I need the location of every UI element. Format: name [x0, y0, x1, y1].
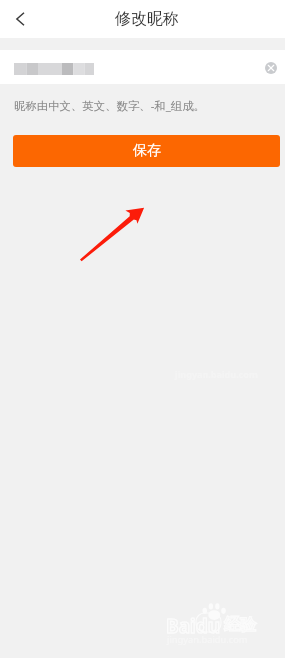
button[interactable]: Back	[0, 0, 40, 38]
staticText: 修改昵称	[115, 9, 179, 29]
button[interactable]: 保存	[13, 135, 280, 167]
staticText: 经验	[224, 615, 256, 635]
staticText: Baidu	[166, 613, 221, 639]
button[interactable]: Clear text	[259, 56, 283, 80]
staticText: 保存	[133, 142, 161, 160]
staticText: 昵称由中文、英文、数字、-和_组成。	[14, 98, 205, 114]
